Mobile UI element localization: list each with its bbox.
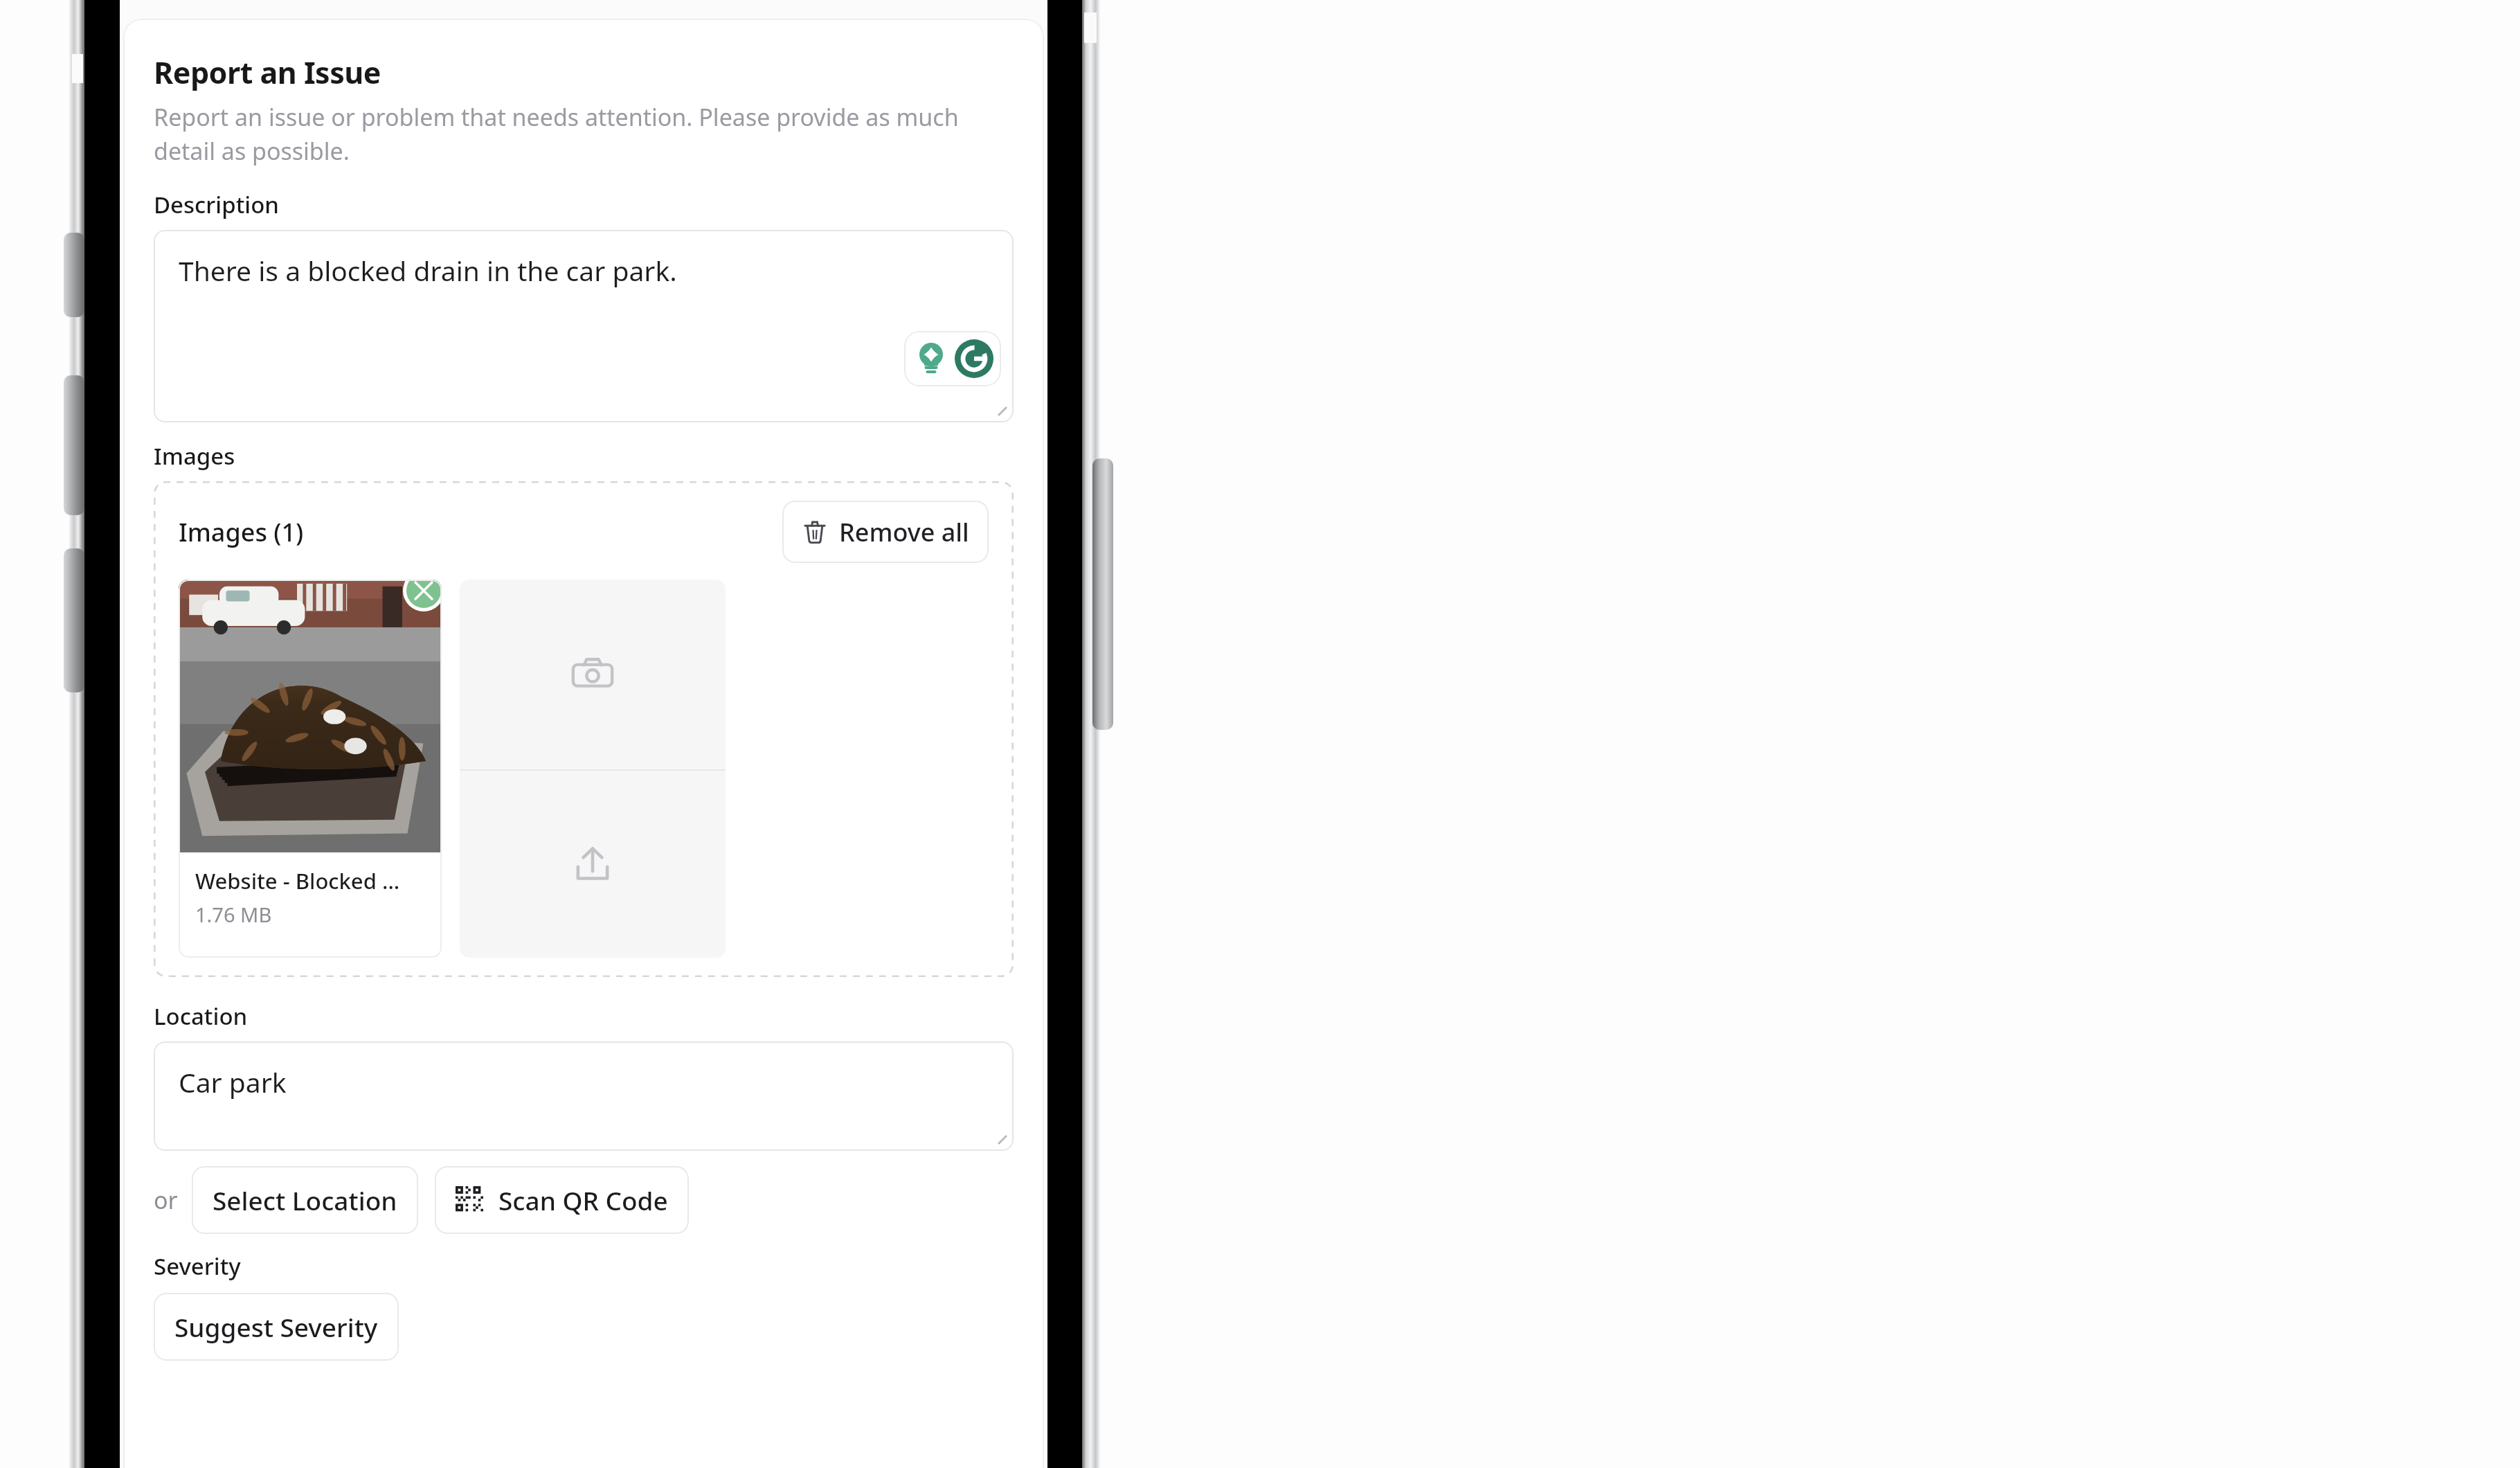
button[interactable]: Take photo bbox=[460, 580, 726, 769]
button[interactable]: Scan QR Code bbox=[435, 1166, 689, 1234]
staticText: Remove all bbox=[839, 515, 969, 549]
button[interactable]: Suggest Severity bbox=[154, 1293, 399, 1361]
staticText: Report an Issue bbox=[154, 52, 381, 93]
staticText: or bbox=[154, 1184, 178, 1216]
button[interactable]: Remove image bbox=[406, 580, 441, 608]
staticText: Website - Blocked ... bbox=[195, 866, 400, 895]
staticText: Suggest Severity bbox=[174, 1309, 378, 1344]
staticText: Car park bbox=[179, 1064, 287, 1100]
button[interactable]: Remove all bbox=[782, 501, 989, 563]
staticText: Description bbox=[154, 189, 280, 220]
staticText: There is a blocked drain in the car park… bbox=[179, 252, 677, 289]
staticText: Images (1) bbox=[179, 515, 304, 549]
staticText: Report an issue or problem that needs at… bbox=[154, 101, 1014, 167]
staticText: Severity bbox=[154, 1251, 241, 1282]
staticText: Select Location bbox=[213, 1183, 397, 1217]
button[interactable]: Grammarly suggestions bbox=[910, 337, 953, 380]
button[interactable]: Website - Blocked ... bbox=[179, 580, 442, 958]
button[interactable]: Upload image bbox=[460, 771, 726, 958]
staticText: Images bbox=[154, 440, 235, 472]
button[interactable]: Select Location bbox=[192, 1166, 418, 1234]
staticText: Scan QR Code bbox=[498, 1183, 668, 1217]
staticText: Location bbox=[154, 1001, 248, 1032]
button[interactable]: There is a blocked drain in the car park… bbox=[154, 230, 1014, 422]
button[interactable]: Grammarly bbox=[953, 337, 996, 380]
button[interactable]: Car park bbox=[154, 1041, 1014, 1151]
staticText: 1.76 MB bbox=[195, 901, 272, 928]
